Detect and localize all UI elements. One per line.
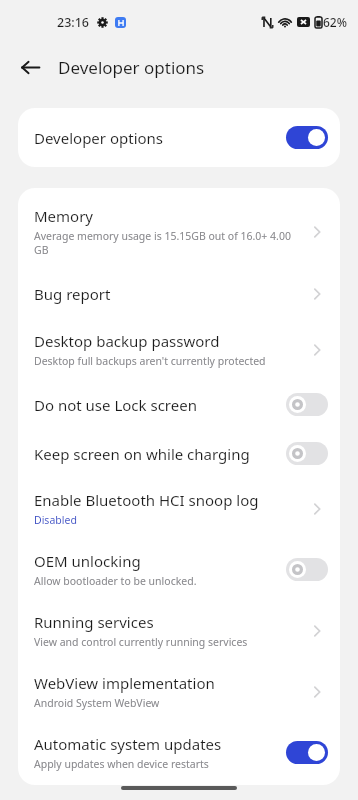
staticText: Running services [34,612,154,632]
button[interactable]: Desktop backup password [18,319,340,380]
staticText: 62% [323,14,347,30]
staticText: Developer options [34,128,286,148]
staticText: Desktop backup password [34,331,220,351]
staticText: Enable Bluetooth HCI snoop log [34,490,259,510]
staticText: 23:16 [57,14,90,31]
staticText: Disabled [34,513,77,527]
staticText: Average memory usage is 15.15GB out of 1… [34,229,298,257]
staticText: View and control currently running servi… [34,635,248,649]
button[interactable]: Running services [18,600,340,661]
button[interactable]: OEM unlocking [18,539,340,600]
staticText: Apply updates when device restarts [34,757,209,771]
staticText: Desktop full backups aren't currently pr… [34,354,266,368]
button[interactable]: Developer options [18,108,340,167]
button[interactable]: Enable Bluetooth HCI snoop log [18,478,340,539]
staticText: Allow bootloader to be unlocked. [34,574,197,588]
button[interactable]: Keep screen on while charging [18,429,340,478]
staticText: OEM unlocking [34,551,141,571]
button[interactable]: Memory [18,188,340,269]
button[interactable]: Back [12,49,48,85]
staticText: Automatic system updates [34,734,222,754]
staticText: Android System WebView [34,696,160,710]
staticText: Bug report [34,284,111,304]
staticText: Keep screen on while charging [34,444,250,464]
staticText: Memory [34,206,94,226]
button[interactable]: Do not use Lock screen [18,380,340,429]
staticText: WebView implementation [34,673,215,693]
button[interactable]: Automatic system updates [18,722,340,785]
staticText: Do not use Lock screen [34,395,197,415]
staticText: HARDRESET [0,672,358,735]
button[interactable]: WebView implementation [18,661,340,722]
staticText: Developer options [58,56,205,79]
button[interactable]: Bug report [18,269,340,319]
